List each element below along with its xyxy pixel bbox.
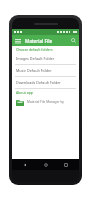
staticText: Downloads Default Folder <box>16 80 61 85</box>
staticText: Material File Manager by Connor Agunest <box>27 100 75 104</box>
button[interactable]: Open navigation drawer <box>12 35 23 46</box>
button[interactable]: Recent apps <box>59 159 73 170</box>
button[interactable]: Downloads Default Folder <box>12 77 79 88</box>
staticText: Images Default Folder <box>16 56 55 61</box>
button[interactable]: Back <box>18 159 32 170</box>
staticText: Choose default folders <box>16 47 53 52</box>
button[interactable]: Music Default Folder <box>12 65 79 76</box>
button[interactable]: Search <box>68 35 79 46</box>
staticText: Music Default Folder <box>16 68 52 73</box>
staticText: About app <box>16 90 33 95</box>
staticText: Material File Manager <box>25 38 66 44</box>
button[interactable]: Home <box>39 159 53 170</box>
button[interactable]: Images Default Folder <box>12 53 79 64</box>
button[interactable]: Material File Manager by Connor Agunest <box>12 96 79 108</box>
